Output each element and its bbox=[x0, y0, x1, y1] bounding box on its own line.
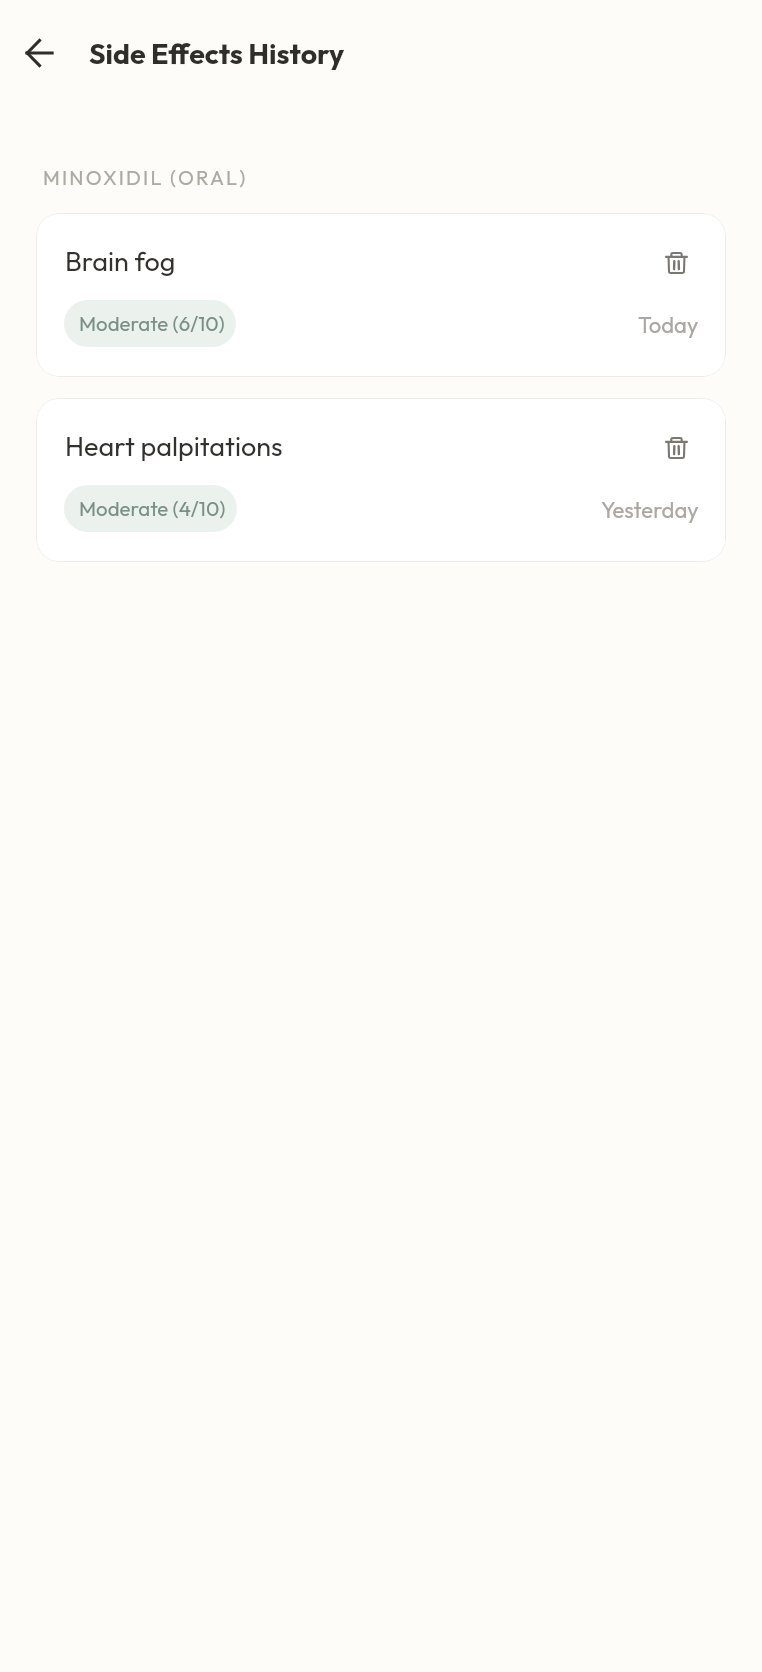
staticText: Yesterday bbox=[601, 496, 699, 524]
button[interactable]: Moderate (6/10) bbox=[64, 300, 236, 347]
button[interactable]: Moderate (4/10) bbox=[64, 485, 237, 532]
button[interactable]: Delete Heart palpitations bbox=[654, 425, 699, 470]
staticText: MINOXIDIL (ORAL) bbox=[43, 165, 248, 190]
staticText: Moderate (4/10) bbox=[79, 496, 226, 522]
staticText: Moderate (6/10) bbox=[79, 311, 225, 337]
button[interactable]: Heart palpitations bbox=[36, 398, 726, 562]
button[interactable]: Brain fog bbox=[36, 213, 726, 377]
staticText: Today bbox=[638, 311, 699, 339]
staticText: Side Effects History bbox=[89, 35, 345, 71]
staticText: Heart palpitations bbox=[65, 429, 283, 463]
button[interactable]: Delete Brain fog bbox=[654, 240, 699, 285]
button[interactable]: Back bbox=[16, 30, 62, 76]
staticText: Brain fog bbox=[65, 244, 176, 278]
